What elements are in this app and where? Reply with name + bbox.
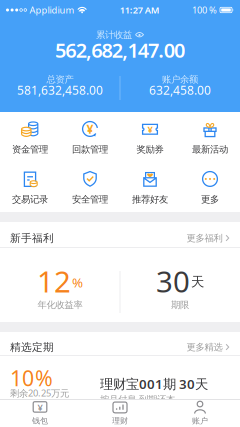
staticText: Applidium: [30, 4, 75, 16]
staticText: 总资产: [46, 74, 73, 85]
staticText: 安全管理: [72, 194, 108, 205]
staticText: ¥: [37, 401, 42, 413]
staticText: 剩余20.25万元: [10, 387, 69, 399]
button[interactable]: 更多精选: [186, 341, 230, 353]
staticText: 按月付息 到期还本: [100, 394, 175, 405]
staticText: 奖励券: [136, 144, 163, 155]
staticText: 精选定期: [10, 341, 54, 354]
staticText: 11:27 AM: [120, 4, 160, 16]
staticText: 更多: [201, 194, 219, 205]
staticText: 10: [10, 364, 34, 392]
staticText: 最新活动: [192, 144, 228, 155]
staticText: 更多福利: [186, 232, 222, 244]
staticText: 581,632,458.00: [17, 82, 103, 98]
staticText: ¥: [147, 123, 152, 135]
button[interactable]: 资金管理: [0, 112, 60, 162]
button[interactable]: 10: [0, 356, 240, 399]
staticText: ¥: [86, 121, 93, 137]
staticText: 期限: [171, 299, 189, 311]
staticText: 账户: [192, 416, 208, 426]
button[interactable]: 12: [0, 248, 240, 322]
button[interactable]: 更多福利: [186, 232, 230, 244]
staticText: 30: [156, 261, 190, 300]
staticText: 天: [191, 273, 204, 290]
staticText: 632,458.00: [149, 82, 211, 98]
button[interactable]: ¥: [0, 400, 80, 427]
staticText: 推荐好友: [132, 194, 168, 205]
button[interactable]: ¥: [60, 112, 120, 162]
staticText: 新手福利: [10, 232, 54, 245]
button[interactable]: ¥: [120, 112, 180, 162]
staticText: 562,682,147.00: [55, 37, 185, 63]
staticText: 累计收益: [96, 29, 132, 41]
staticText: 账户余额: [162, 74, 198, 85]
staticText: 理财宝001期 30天: [100, 375, 208, 393]
staticText: 理财: [112, 416, 128, 426]
button[interactable]: 理财: [80, 400, 160, 427]
staticText: 更多精选: [186, 341, 222, 353]
button[interactable]: 累计收益: [96, 30, 144, 40]
staticText: 资金管理: [12, 144, 48, 155]
staticText: 回款管理: [72, 144, 108, 155]
staticText: %: [35, 364, 53, 392]
button[interactable]: 交易记录: [0, 162, 60, 212]
button[interactable]: 账户: [160, 400, 240, 427]
button[interactable]: 安全管理: [60, 162, 120, 212]
staticText: 100 %: [192, 4, 217, 16]
staticText: 交易记录: [12, 194, 48, 205]
staticText: 钱包: [32, 416, 48, 426]
button[interactable]: 最新活动: [180, 112, 240, 162]
staticText: 年化收益率: [37, 299, 82, 311]
staticText: 12: [37, 261, 71, 300]
button[interactable]: 推荐好友: [120, 162, 180, 212]
button[interactable]: 更多: [180, 162, 240, 212]
staticText: %: [72, 273, 83, 291]
